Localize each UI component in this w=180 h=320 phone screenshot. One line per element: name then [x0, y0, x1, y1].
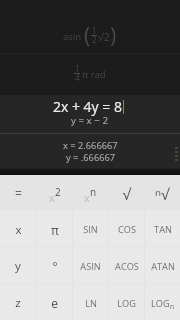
button[interactable]: square root	[109, 175, 144, 210]
button[interactable]: ACOS	[109, 247, 144, 283]
staticText: =	[15, 185, 22, 201]
staticText: z	[15, 295, 21, 311]
button[interactable]: COS	[109, 211, 144, 246]
button[interactable]: x to the power n	[73, 175, 108, 210]
staticText: COS	[118, 223, 136, 236]
staticText: LN	[85, 297, 97, 310]
staticText: e	[51, 295, 58, 311]
staticText: x	[15, 222, 22, 238]
staticText: n	[170, 302, 174, 311]
staticText: 1	[92, 25, 97, 37]
button[interactable]: π	[37, 211, 72, 246]
button[interactable]: ASIN	[73, 247, 108, 283]
button[interactable]: x squared	[37, 175, 72, 210]
button[interactable]: log base n	[145, 284, 180, 320]
button[interactable]: x	[0, 211, 36, 246]
staticText: SIN	[83, 223, 98, 236]
staticText: π	[51, 222, 59, 238]
staticText: n	[90, 185, 97, 199]
staticText: TAN	[154, 223, 172, 236]
staticText: π rad	[82, 68, 106, 81]
staticText: ⁿ√	[155, 184, 170, 204]
staticText: 2	[92, 34, 97, 46]
staticText: x	[49, 190, 55, 205]
staticText: 2x + 4y = 8	[53, 97, 122, 116]
staticText: y = .666667	[66, 151, 116, 164]
button[interactable]: z	[0, 284, 36, 320]
button[interactable]: y	[0, 247, 36, 283]
staticText: √2	[98, 30, 110, 44]
staticText: ACOS	[115, 260, 139, 273]
button[interactable]: =	[0, 175, 36, 210]
staticText: x = 2.666667	[63, 139, 118, 152]
button[interactable]: asin	[63, 22, 117, 51]
staticText: LOG	[117, 297, 136, 310]
staticText: 4	[75, 72, 80, 84]
staticText: (	[84, 21, 91, 50]
staticText: °	[52, 258, 58, 274]
staticText: y = x − 2	[71, 114, 109, 127]
staticText: y	[15, 258, 21, 274]
button[interactable]: ATAN	[145, 247, 180, 283]
button[interactable]: LOG	[109, 284, 144, 320]
button[interactable]: °	[37, 247, 72, 283]
staticText: ATAN	[151, 260, 175, 273]
staticText: ASIN	[80, 260, 101, 273]
button[interactable]: SIN	[73, 211, 108, 246]
staticText: )	[110, 21, 117, 50]
staticText: LOG	[151, 297, 170, 310]
staticText: 2	[55, 185, 61, 199]
staticText: √	[122, 184, 131, 204]
staticText: 1	[75, 63, 80, 75]
button[interactable]: LN	[73, 284, 108, 320]
button[interactable]: TAN	[145, 211, 180, 246]
button[interactable]: e	[37, 284, 72, 320]
staticText: asin	[63, 30, 82, 43]
staticText: x	[84, 190, 90, 205]
button[interactable]: nth root	[145, 175, 180, 210]
